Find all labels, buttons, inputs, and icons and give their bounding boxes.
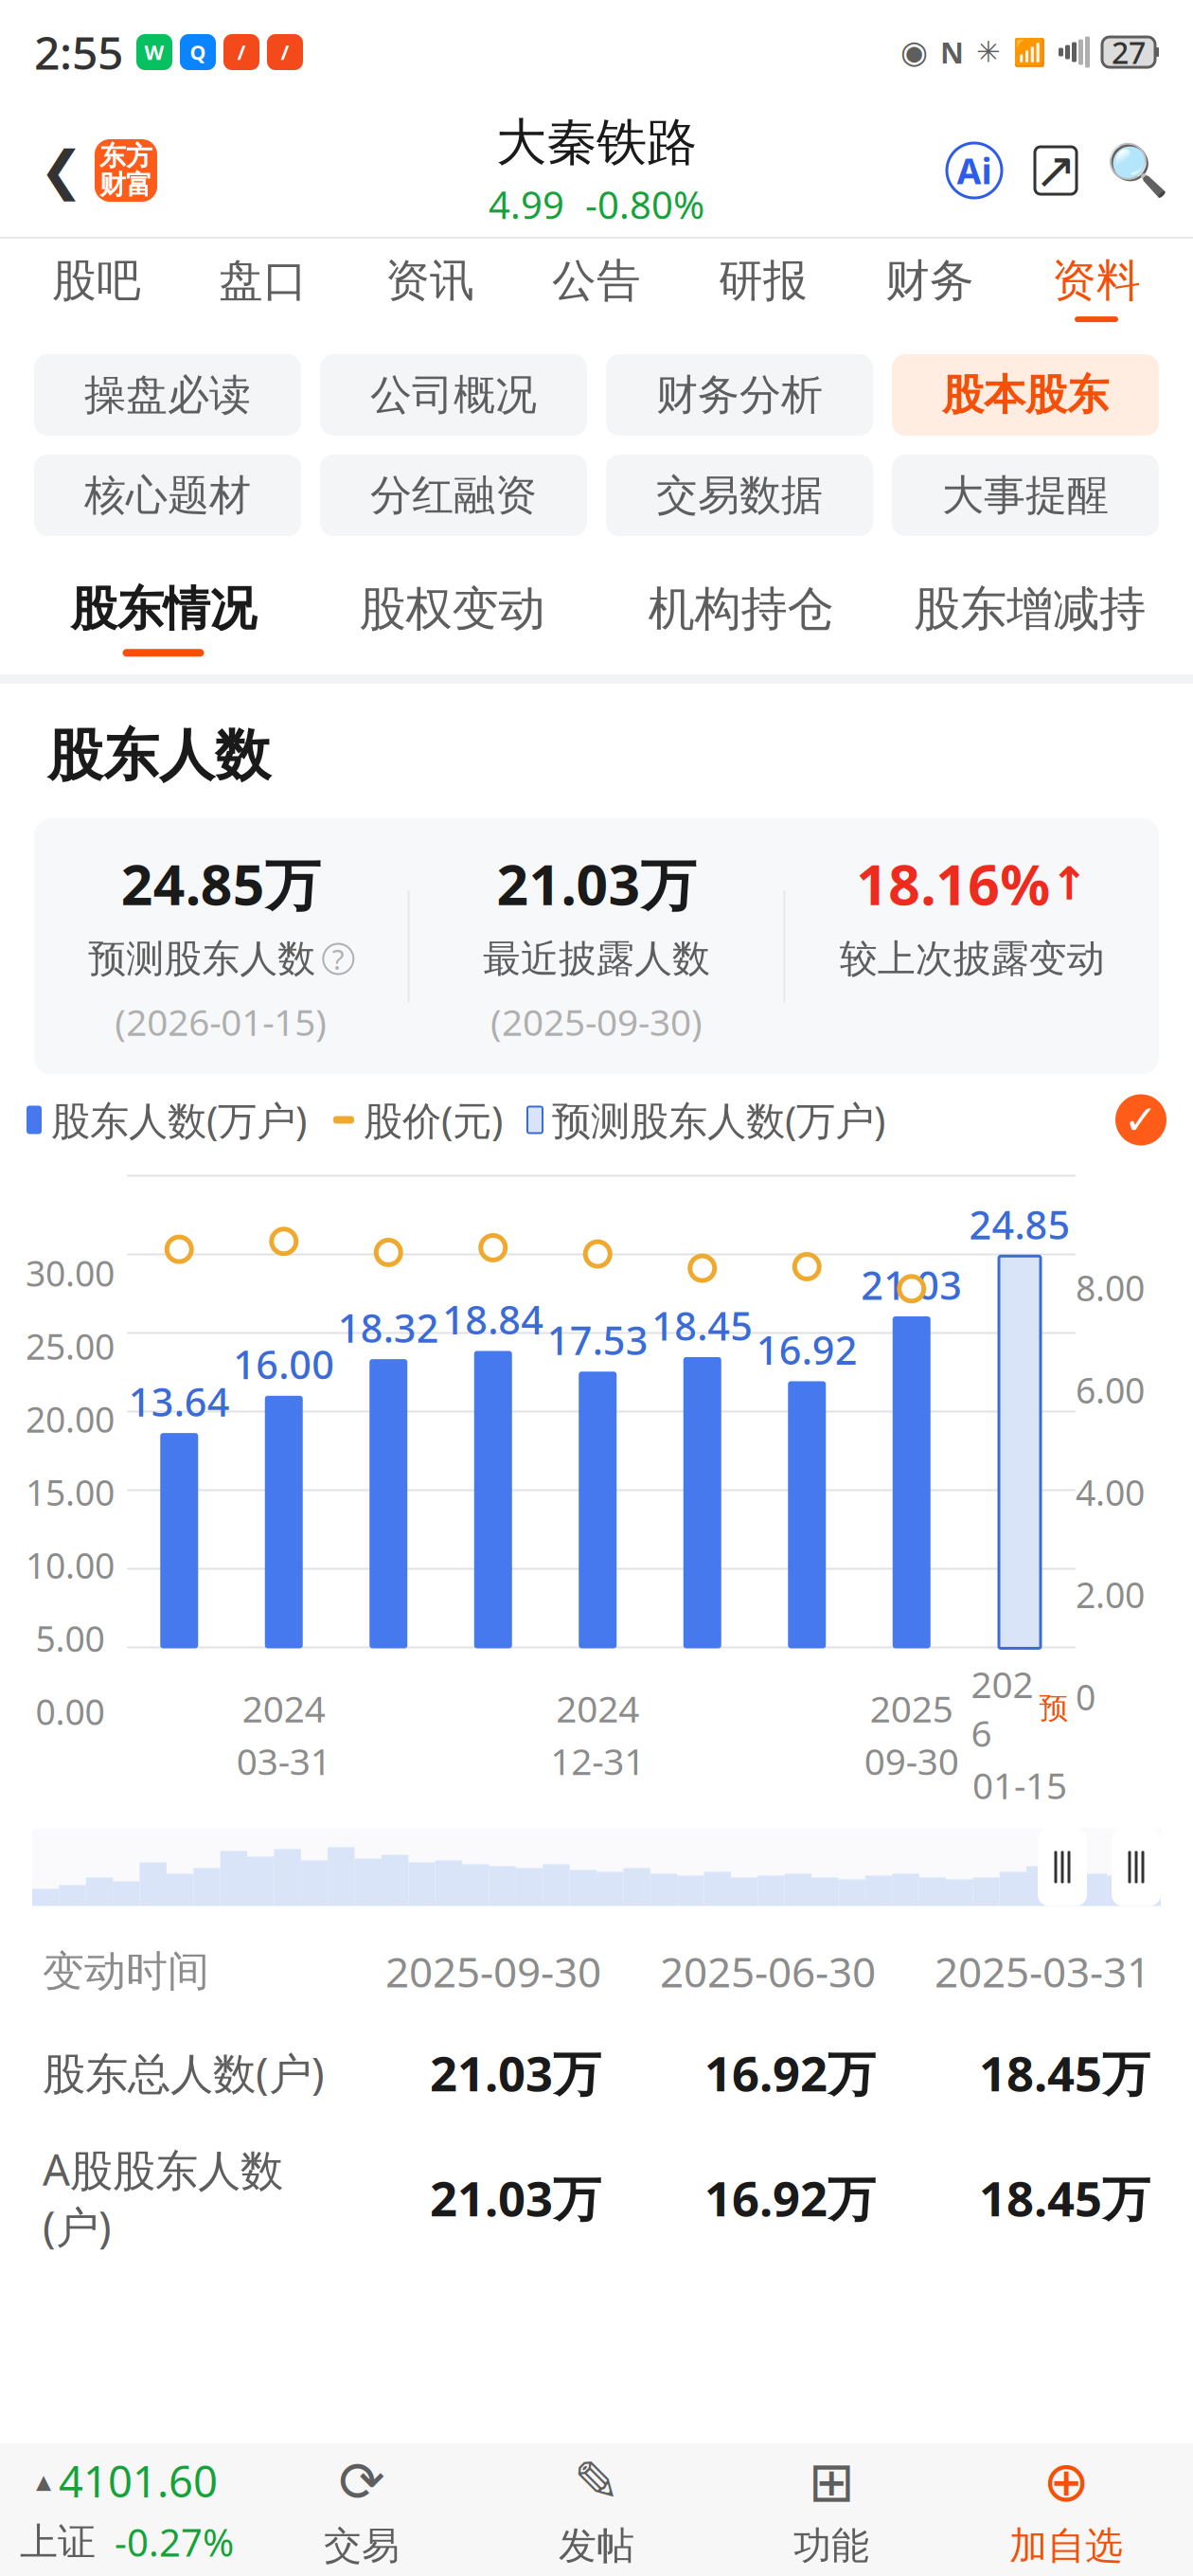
- button[interactable]: 股本股东: [892, 354, 1159, 436]
- staticText: 核心题材: [84, 470, 251, 521]
- staticText: 上证: [20, 2519, 96, 2565]
- button[interactable]: East Money home: [95, 139, 157, 202]
- staticText: 16.92: [756, 1324, 858, 1376]
- button[interactable]: 财务分析: [606, 354, 873, 436]
- staticText: 大秦铁路: [496, 111, 697, 174]
- staticText: 18.84: [442, 1293, 544, 1345]
- staticText: ✳: [976, 36, 1001, 69]
- button[interactable]: 操盘必读: [34, 354, 301, 436]
- staticText: 0.00: [36, 1688, 105, 1735]
- staticText: 预测股东人数: [88, 936, 316, 982]
- button[interactable]: ✎: [479, 2443, 714, 2576]
- button[interactable]: Range end handle: [1112, 1828, 1161, 1906]
- staticText: 预测股东人数(万户): [552, 1094, 885, 1146]
- button[interactable]: 机构持仓: [596, 563, 885, 674]
- staticText: 18.45: [652, 1299, 753, 1351]
- staticText: 4101.60: [59, 2452, 218, 2509]
- button[interactable]: ▴: [9, 2443, 244, 2576]
- staticText: (2026-01-15): [115, 997, 327, 1046]
- staticText: ▴: [36, 2464, 51, 2498]
- staticText: /: [237, 39, 246, 65]
- staticText: 资料: [1052, 254, 1141, 308]
- button[interactable]: 股东增减持: [885, 563, 1174, 674]
- staticText: 15.00: [26, 1469, 115, 1516]
- staticText: 0: [1076, 1673, 1095, 1720]
- staticText: 股东增减持: [914, 580, 1146, 638]
- staticText: Q: [190, 39, 206, 65]
- staticText: 2:55: [34, 22, 123, 82]
- staticText: 4.00: [1076, 1469, 1145, 1516]
- staticText: 公司概况: [370, 369, 537, 420]
- staticText: 16.00: [233, 1338, 335, 1390]
- staticText: ❮: [39, 140, 84, 201]
- staticText: ↑: [1050, 858, 1088, 909]
- staticText: W: [144, 39, 164, 65]
- staticText: ⊕: [1043, 2450, 1089, 2513]
- staticText: 财务分析: [656, 369, 823, 420]
- button[interactable]: 交易数据: [606, 455, 873, 536]
- button[interactable]: ⊕: [949, 2443, 1184, 2576]
- staticText: (2025-09-30): [490, 997, 703, 1046]
- button[interactable]: 公司概况: [320, 354, 587, 436]
- staticText: 21.03万: [430, 2166, 601, 2229]
- button[interactable]: Back: [28, 123, 95, 218]
- staticText: 股本股东: [942, 369, 1109, 420]
- button[interactable]: 核心题材: [34, 455, 301, 536]
- button[interactable]: Share: [1028, 143, 1083, 198]
- staticText: 30.00: [26, 1249, 115, 1296]
- button[interactable]: 公告: [513, 239, 680, 337]
- button[interactable]: Confirm legend selection: [1115, 1094, 1166, 1145]
- staticText: 股东总人数(户): [43, 2044, 325, 2101]
- button[interactable]: Search: [1110, 143, 1165, 198]
- staticText: ✎: [573, 2450, 620, 2513]
- button[interactable]: 研报: [680, 239, 846, 337]
- staticText: 2.00: [1076, 1571, 1145, 1618]
- staticText: -0.27%: [115, 2517, 234, 2567]
- staticText: 2025-06-30: [660, 1944, 876, 1999]
- button[interactable]: ⟳: [244, 2443, 479, 2576]
- button[interactable]: AI assistant: [947, 143, 1002, 198]
- button[interactable]: 股东情况: [19, 563, 308, 674]
- button[interactable]: 资料: [1013, 239, 1180, 337]
- staticText: 股东人数: [47, 722, 271, 790]
- staticText: 公告: [552, 254, 641, 308]
- staticText: 最近披露人数: [483, 936, 710, 982]
- button[interactable]: 大事提醒: [892, 455, 1159, 536]
- staticText: Ai: [957, 147, 992, 194]
- staticText: 资讯: [385, 254, 474, 308]
- staticText: 机构持仓: [648, 580, 834, 638]
- button[interactable]: 股吧: [13, 239, 180, 337]
- staticText: 股东情况: [71, 580, 256, 638]
- staticText: 18.45万: [979, 2166, 1150, 2229]
- button[interactable]: 股权变动: [308, 563, 596, 674]
- button[interactable]: 财务: [846, 239, 1013, 337]
- button[interactable]: Range start handle: [1038, 1828, 1087, 1906]
- staticText: 18.45万: [979, 2041, 1150, 2104]
- staticText: 2026: [971, 1660, 1033, 1757]
- staticText: 20.00: [26, 1395, 115, 1442]
- staticText: 16.92万: [704, 2041, 876, 2104]
- staticText: 8.00: [1076, 1264, 1145, 1311]
- staticText: 财务: [885, 254, 974, 308]
- button[interactable]: 分红融资: [320, 455, 587, 536]
- staticText: 24.85万: [121, 847, 321, 921]
- staticText: 2024: [556, 1684, 639, 1733]
- staticText: 10.00: [26, 1542, 115, 1589]
- staticText: 17.53: [547, 1314, 648, 1366]
- staticText: ⊞: [808, 2450, 855, 2513]
- button[interactable]: 资讯: [347, 239, 513, 337]
- button[interactable]: 盘口: [180, 239, 347, 337]
- staticText: 大事提醒: [942, 470, 1109, 521]
- staticText: ◉: [900, 34, 928, 70]
- staticText: 24.85: [969, 1198, 1070, 1250]
- staticText: A股股东人数(户): [43, 2141, 283, 2255]
- button[interactable]: ⊞: [714, 2443, 949, 2576]
- staticText: 操盘必读: [84, 369, 251, 420]
